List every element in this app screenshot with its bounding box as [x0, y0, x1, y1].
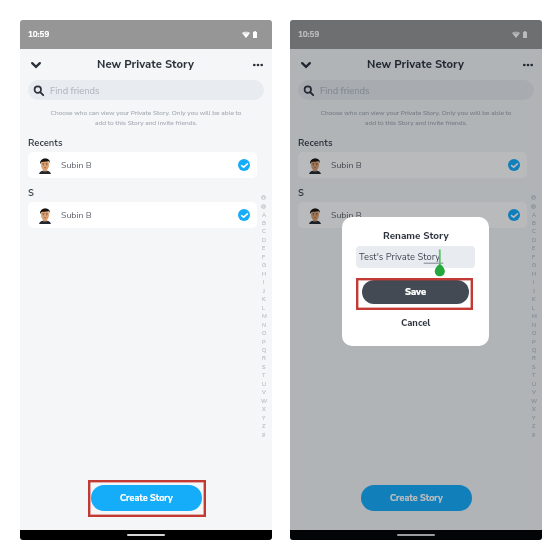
staticText: K	[262, 295, 266, 303]
other: Shortcuts	[531, 195, 536, 200]
staticText: A	[532, 211, 537, 219]
staticText: Subin B	[331, 159, 362, 171]
button[interactable]: Test's Private Story	[356, 246, 475, 268]
button[interactable]: Create Story	[91, 485, 202, 511]
staticText: C	[262, 227, 266, 235]
staticText: I	[263, 278, 265, 286]
staticText: Choose who can view your Private Story. …	[44, 108, 248, 127]
staticText: K	[532, 295, 536, 303]
staticText: Save	[405, 286, 427, 299]
staticText: V	[532, 388, 536, 396]
button[interactable]: Subin B	[298, 152, 527, 178]
staticText: E	[532, 244, 536, 252]
button[interactable]: Close	[25, 54, 47, 76]
staticText: O	[262, 329, 267, 337]
staticText: Q	[262, 346, 267, 354]
staticText: Subin B	[331, 209, 362, 221]
staticText: Q	[532, 346, 537, 354]
staticText: Cancel	[401, 317, 431, 330]
staticText: F	[262, 253, 266, 261]
staticText: W	[261, 397, 268, 405]
staticText: N	[262, 321, 267, 329]
staticText: C	[532, 227, 536, 235]
staticText: New Private Story	[367, 57, 465, 72]
staticText: Create Story	[390, 492, 443, 504]
staticText: W	[531, 397, 538, 405]
staticText: S	[532, 363, 536, 371]
staticText: #	[262, 431, 266, 439]
staticText: Z	[262, 422, 266, 430]
staticText: S	[28, 186, 34, 199]
staticText: #	[532, 431, 536, 439]
staticText: M	[532, 312, 537, 320]
staticText: E	[262, 244, 266, 252]
staticText: Create Story	[120, 492, 173, 504]
staticText: S	[262, 363, 266, 371]
button[interactable]: More options	[247, 54, 269, 76]
staticText: Subin B	[61, 159, 92, 171]
staticText: F	[532, 253, 536, 261]
staticText: O	[532, 329, 537, 337]
staticText: A	[262, 211, 267, 219]
button[interactable]: Close	[295, 54, 317, 76]
staticText: P	[262, 338, 266, 346]
staticText: B	[532, 219, 536, 227]
button[interactable]: Subin B	[28, 152, 257, 178]
staticText: U	[532, 380, 537, 388]
staticText: J	[533, 287, 535, 295]
staticText: Find friends	[320, 84, 370, 97]
button[interactable]: Subin B	[28, 202, 257, 228]
button[interactable]: Cancel	[391, 313, 441, 334]
staticText: D	[532, 236, 537, 244]
staticText: L	[532, 304, 536, 312]
staticText: L	[262, 304, 266, 312]
staticText: P	[532, 338, 536, 346]
staticText: B	[262, 219, 266, 227]
staticText: H	[262, 270, 267, 278]
staticText: N	[532, 321, 537, 329]
other: Shortcuts	[261, 195, 266, 200]
staticText: Z	[532, 422, 536, 430]
staticText: M	[262, 312, 267, 320]
button[interactable]: More options	[517, 54, 539, 76]
button[interactable]: Save	[362, 280, 469, 304]
staticText: T	[532, 371, 536, 379]
staticText: D	[262, 236, 267, 244]
staticText: Recents	[28, 136, 63, 149]
staticText: Y	[532, 414, 536, 422]
staticText: V	[262, 388, 266, 396]
button[interactable]: Find friends	[28, 80, 264, 100]
staticText: J	[263, 287, 265, 295]
staticText: Choose who can view your Private Story. …	[314, 108, 518, 127]
staticText: 10:59	[298, 29, 320, 40]
button[interactable]: Create Story	[361, 485, 472, 511]
staticText: G	[262, 261, 267, 269]
staticText: R	[262, 354, 266, 362]
staticText: U	[262, 380, 267, 388]
staticText: R	[532, 354, 536, 362]
staticText: T	[262, 371, 266, 379]
staticText: G	[532, 261, 537, 269]
staticText: I	[533, 278, 535, 286]
staticText: H	[532, 270, 537, 278]
staticText: S	[298, 186, 304, 199]
staticText: Find friends	[50, 84, 100, 97]
staticText: 10:59	[28, 29, 50, 40]
staticText: Subin B	[61, 209, 92, 221]
staticText: Test's Private Story	[359, 251, 441, 264]
staticText: New Private Story	[97, 57, 195, 72]
button[interactable]: Subin B	[298, 202, 527, 228]
staticText: X	[532, 405, 536, 413]
staticText: Recents	[298, 136, 333, 149]
staticText: Y	[262, 414, 266, 422]
button[interactable]: Find friends	[298, 80, 534, 100]
staticText: Rename Story	[383, 229, 449, 242]
staticText: X	[262, 405, 266, 413]
